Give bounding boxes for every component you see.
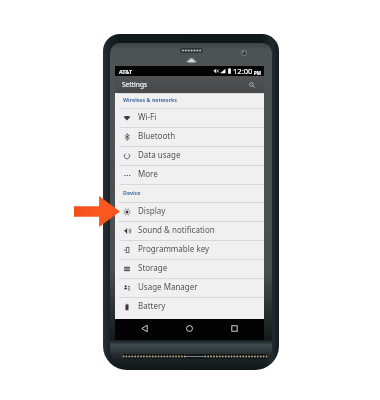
button[interactable]: Wi-Fi [115, 108, 264, 127]
staticText: 12:00 [233, 66, 253, 76]
staticText: Usage Manager [138, 281, 198, 292]
staticText: Data usage [138, 149, 181, 160]
button[interactable]: Programmable key [115, 240, 264, 259]
button[interactable]: Home [180, 320, 199, 339]
staticText: Storage [138, 262, 168, 273]
button[interactable]: Data usage [115, 146, 264, 165]
staticText: Device [123, 189, 141, 196]
button[interactable]: Display [115, 202, 264, 221]
staticText: More [138, 168, 158, 179]
staticText: PM [254, 70, 261, 76]
staticText: Programmable key [138, 243, 210, 254]
other: Pointer to Display [74, 196, 120, 227]
button[interactable]: Back [135, 320, 154, 339]
button[interactable]: Sound & notification [115, 221, 264, 240]
button[interactable]: Search [245, 78, 259, 92]
button[interactable]: Usage Manager [115, 278, 264, 297]
button[interactable]: Recents [225, 320, 244, 339]
staticText: Sound & notification [138, 224, 215, 235]
staticText: AT&T [119, 68, 133, 75]
button[interactable]: Bluetooth [115, 127, 264, 146]
staticText: Wireless & networks [123, 96, 177, 103]
staticText: Bluetooth [138, 130, 176, 141]
staticText: Battery [138, 300, 166, 311]
staticText: Display [138, 205, 166, 216]
button[interactable]: Battery [115, 297, 264, 316]
button[interactable]: More [115, 165, 264, 184]
button[interactable]: Storage [115, 259, 264, 278]
staticText: Wi-Fi [138, 111, 157, 122]
staticText: Settings [122, 80, 148, 89]
